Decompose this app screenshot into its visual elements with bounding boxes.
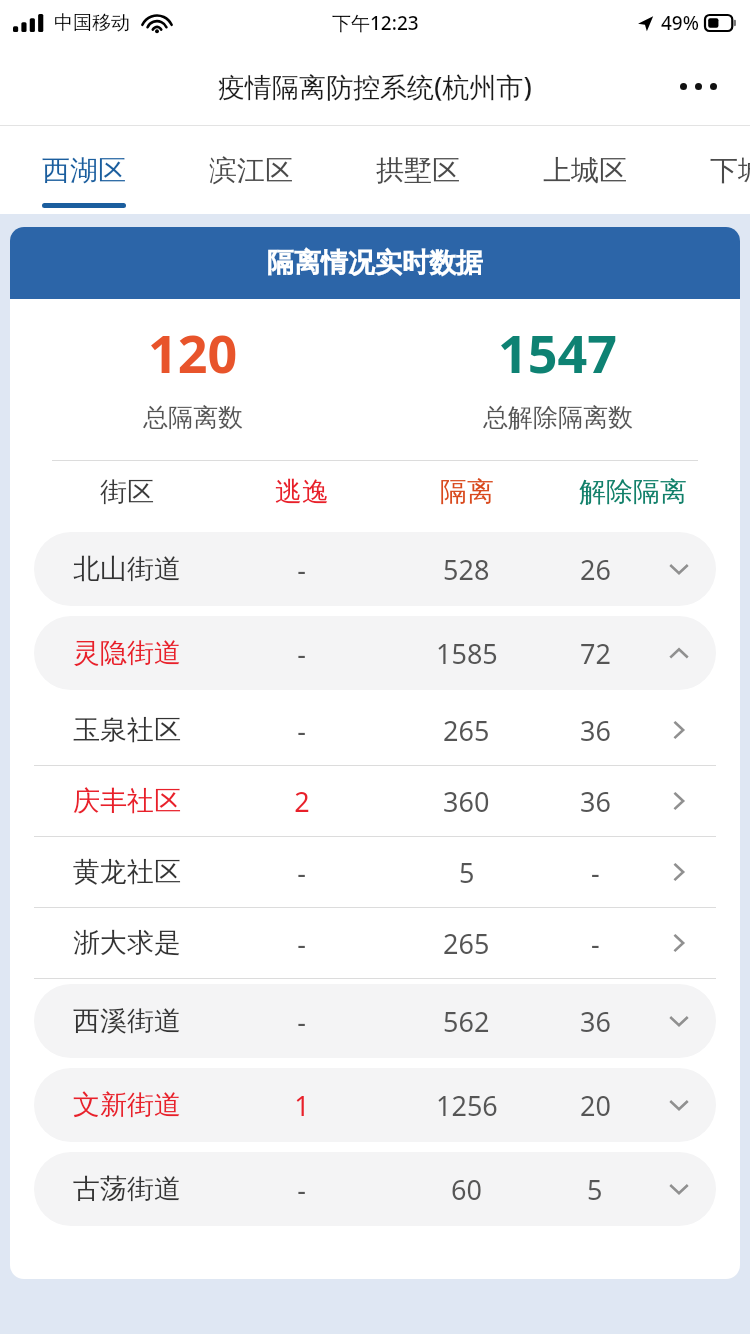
staticText: 西湖区 bbox=[42, 153, 126, 188]
staticText: 浙大求是 bbox=[73, 926, 181, 960]
staticText: 中国移动 bbox=[54, 11, 130, 35]
staticText: 隔离 bbox=[440, 475, 494, 509]
button[interactable]: 玉泉社区 bbox=[34, 695, 716, 765]
staticText: 北山街道 bbox=[73, 552, 181, 586]
button[interactable]: 黄龙社区 bbox=[34, 837, 716, 907]
staticText: 1585 bbox=[436, 635, 498, 672]
staticText: 49% bbox=[661, 10, 699, 36]
staticText: 总隔离数 bbox=[143, 402, 243, 433]
staticText: 36 bbox=[580, 783, 611, 820]
button[interactable]: 灵隐街道 bbox=[34, 616, 716, 690]
staticText: 庆丰社区 bbox=[73, 784, 181, 818]
staticText: - bbox=[297, 854, 306, 891]
staticText: 滨江区 bbox=[209, 153, 293, 188]
staticText: 2 bbox=[294, 783, 310, 820]
staticText: 灵隐街道 bbox=[73, 636, 181, 670]
staticText: 逃逸 bbox=[275, 475, 329, 509]
staticText: 1 bbox=[294, 1087, 310, 1124]
staticText: 上城区 bbox=[543, 153, 627, 188]
staticText: 1547 bbox=[498, 317, 617, 388]
staticText: - bbox=[591, 854, 600, 891]
button[interactable]: 浙大求是 bbox=[34, 908, 716, 978]
staticText: 黄龙社区 bbox=[73, 855, 181, 889]
staticText: 解除隔离 bbox=[579, 475, 687, 509]
staticText: 隔离情况实时数据 bbox=[267, 246, 483, 280]
button[interactable]: 下城区 bbox=[668, 126, 750, 214]
staticText: - bbox=[297, 712, 306, 749]
staticText: 拱墅区 bbox=[376, 153, 460, 188]
staticText: - bbox=[297, 551, 306, 588]
button[interactable]: More options bbox=[670, 58, 726, 114]
staticText: 120 bbox=[148, 317, 238, 388]
staticText: 72 bbox=[580, 635, 611, 672]
button[interactable]: 西溪街道 bbox=[34, 984, 716, 1058]
staticText: 562 bbox=[443, 1003, 490, 1040]
button[interactable]: 庆丰社区 bbox=[34, 766, 716, 836]
staticText: 下午12:23 bbox=[332, 10, 419, 36]
staticText: 街区 bbox=[100, 475, 154, 509]
button[interactable]: 西湖区 bbox=[0, 126, 167, 214]
staticText: - bbox=[297, 1003, 306, 1040]
staticText: 玉泉社区 bbox=[73, 713, 181, 747]
staticText: 528 bbox=[443, 551, 490, 588]
staticText: 古荡街道 bbox=[73, 1172, 181, 1206]
staticText: 总解除隔离数 bbox=[483, 402, 633, 433]
button[interactable]: 上城区 bbox=[501, 126, 668, 214]
staticText: 疫情隔离防控系统(杭州市) bbox=[218, 68, 532, 105]
staticText: - bbox=[591, 925, 600, 962]
staticText: 5 bbox=[459, 854, 475, 891]
staticText: 36 bbox=[580, 1003, 611, 1040]
staticText: 1256 bbox=[436, 1087, 498, 1124]
button[interactable]: 文新街道 bbox=[34, 1068, 716, 1142]
staticText: 265 bbox=[443, 712, 490, 749]
staticText: 360 bbox=[443, 783, 490, 820]
staticText: 36 bbox=[580, 712, 611, 749]
staticText: 60 bbox=[451, 1171, 482, 1208]
staticText: 26 bbox=[580, 551, 611, 588]
staticText: - bbox=[297, 1171, 306, 1208]
staticText: 5 bbox=[587, 1171, 603, 1208]
staticText: 265 bbox=[443, 925, 490, 962]
staticText: 下城区 bbox=[710, 153, 750, 188]
staticText: - bbox=[297, 925, 306, 962]
staticText: 20 bbox=[580, 1087, 611, 1124]
staticText: - bbox=[297, 635, 306, 672]
staticText: 西溪街道 bbox=[73, 1004, 181, 1038]
staticText: 文新街道 bbox=[73, 1088, 181, 1122]
button[interactable]: 滨江区 bbox=[167, 126, 334, 214]
button[interactable]: 古荡街道 bbox=[34, 1152, 716, 1226]
button[interactable]: 拱墅区 bbox=[334, 126, 501, 214]
button[interactable]: 北山街道 bbox=[34, 532, 716, 606]
